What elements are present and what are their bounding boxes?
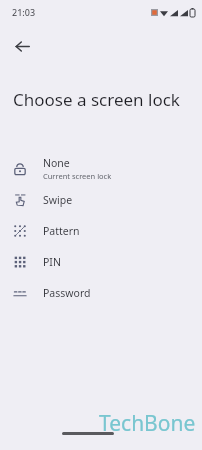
staticText: Pattern (43, 224, 80, 238)
staticText: Current screen lock (43, 171, 112, 181)
button[interactable]: None (0, 153, 202, 184)
staticText: None (43, 156, 70, 170)
button[interactable]: PIN (0, 246, 202, 277)
staticText: Swipe (43, 193, 73, 207)
button[interactable]: Pattern (0, 215, 202, 246)
staticText: PIN (43, 255, 61, 269)
button[interactable]: Password (0, 277, 202, 308)
staticText: TechBone (99, 409, 196, 438)
staticText: Password (43, 286, 91, 300)
button[interactable]: Back (6, 30, 38, 62)
staticText: Choose a screen lock (13, 88, 180, 111)
staticText: 21:03 (12, 6, 36, 18)
button[interactable]: Swipe (0, 184, 202, 215)
